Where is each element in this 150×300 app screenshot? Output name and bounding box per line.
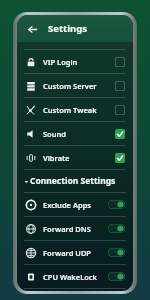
- staticText: Exclude Apps: [43, 200, 108, 210]
- staticText: Sound: [43, 129, 115, 139]
- button[interactable]: Forward UDP: [17, 241, 133, 264]
- button[interactable]: Custom Tweak: [17, 98, 133, 121]
- button[interactable]: Exclude Apps: [17, 193, 133, 216]
- button[interactable]: Sound: [17, 122, 133, 145]
- staticText: Forward UDP: [43, 248, 108, 258]
- button[interactable]: CPU WakeLock: [17, 265, 133, 288]
- staticText: Custom Tweak: [43, 105, 115, 115]
- staticText: CPU WakeLock: [43, 272, 108, 282]
- staticText: Forward DNS: [43, 224, 108, 234]
- button[interactable]: Custom Server: [17, 74, 133, 97]
- button[interactable]: Back: [24, 21, 40, 37]
- staticText: - Connection Settings: [25, 175, 116, 187]
- button[interactable]: Forward DNS: [17, 217, 133, 240]
- staticText: Vibrate: [43, 153, 115, 163]
- staticText: VIP Login: [43, 57, 115, 67]
- button[interactable]: VIP Login: [17, 50, 133, 73]
- staticText: Settings: [48, 22, 87, 35]
- button[interactable]: Vibrate: [17, 146, 133, 169]
- staticText: Custom Server: [43, 81, 115, 91]
